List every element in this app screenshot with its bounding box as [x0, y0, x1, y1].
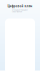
staticText: Цифровой ключ — [7, 4, 32, 8]
staticText: Открывайте машину смартфоном — [12, 9, 28, 12]
